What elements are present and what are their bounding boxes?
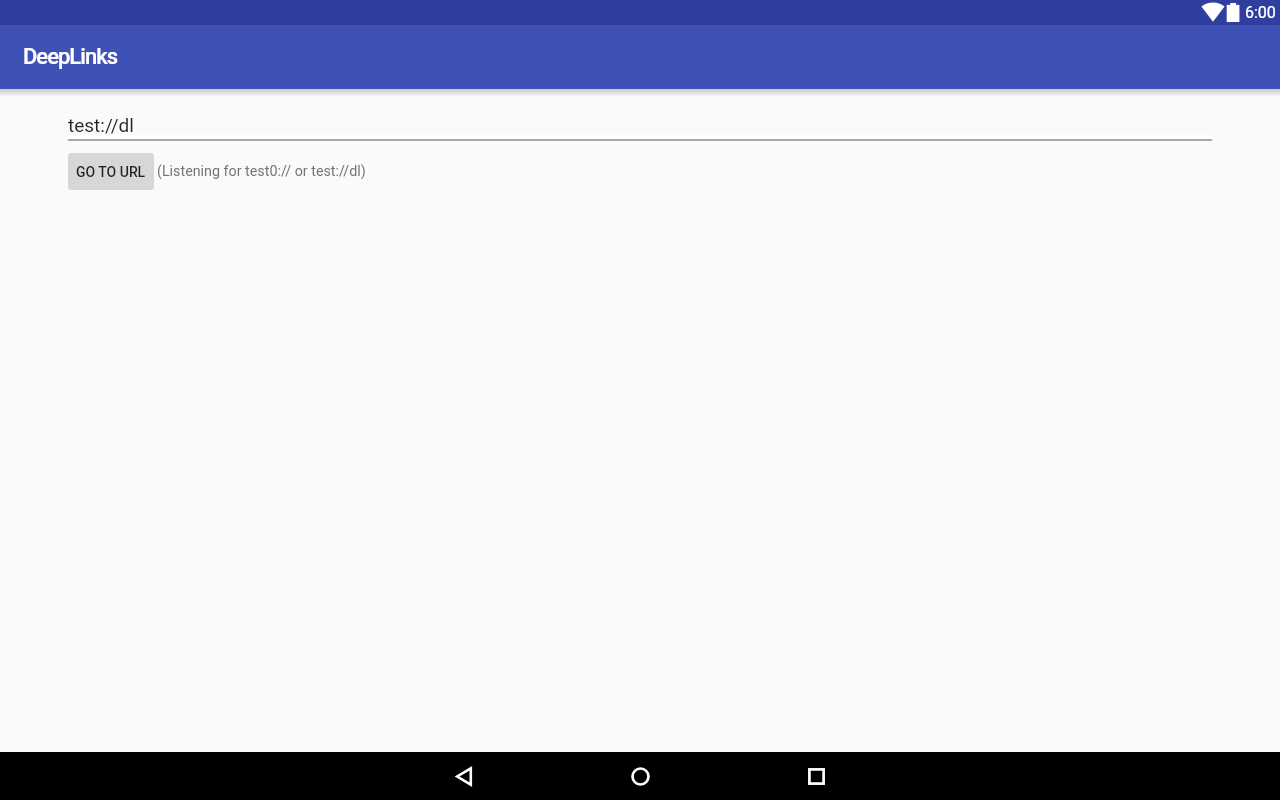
staticText: (Listening for test0:// or test://dl) (157, 163, 366, 180)
staticText: GO TO URL (76, 164, 146, 180)
staticText: DeepLinks (23, 44, 117, 70)
button[interactable]: Home (616, 752, 664, 800)
button[interactable]: URL input field (68, 114, 1212, 141)
button[interactable]: Back (440, 752, 488, 800)
staticText: 6:00 (1245, 3, 1276, 22)
button[interactable]: Recent apps (792, 752, 840, 800)
button[interactable]: GO TO URL (68, 153, 154, 190)
staticText: test://dl (68, 114, 134, 136)
